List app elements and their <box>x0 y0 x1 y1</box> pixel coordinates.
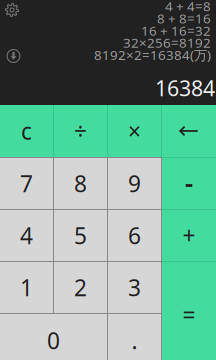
staticText: = <box>182 299 195 329</box>
staticText: ÷ <box>74 116 87 146</box>
button[interactable]: Settings <box>0 0 27 24</box>
staticText: 1 <box>20 272 33 302</box>
staticText: 8 <box>74 168 87 198</box>
staticText: 5 <box>74 220 87 250</box>
button[interactable]: × <box>108 105 161 157</box>
button[interactable]: 0 <box>0 314 107 360</box>
button[interactable]: 4 <box>0 210 53 261</box>
staticText: × <box>128 116 141 146</box>
staticText: 7 <box>20 168 33 198</box>
button[interactable]: 2 <box>54 262 107 313</box>
staticText: 2 <box>74 272 87 302</box>
button[interactable]: Minus <box>162 158 216 209</box>
button[interactable]: Backspace <box>162 105 216 157</box>
button[interactable]: 3 <box>108 262 161 313</box>
button[interactable]: + <box>162 210 216 261</box>
button[interactable]: 8 <box>54 158 107 209</box>
button[interactable]: . <box>108 314 161 360</box>
staticText: 32×256=8192 <box>123 34 211 51</box>
button[interactable]: c <box>0 105 53 157</box>
staticText: 16 + 16=32 <box>141 22 211 39</box>
staticText: 8 + 8=16 <box>157 9 211 27</box>
button[interactable]: History <box>0 43 28 69</box>
staticText: 4 <box>20 220 33 250</box>
button[interactable]: ÷ <box>54 105 107 157</box>
staticText: 8192×2=16384(万) <box>94 46 211 64</box>
button[interactable]: = <box>162 262 216 360</box>
button[interactable]: 7 <box>0 158 53 209</box>
staticText: 16384 <box>155 74 215 102</box>
staticText: 0 <box>47 325 60 355</box>
staticText: . <box>131 325 137 355</box>
button[interactable]: 5 <box>54 210 107 261</box>
staticText: 3 <box>128 272 141 302</box>
staticText: 6 <box>128 220 141 250</box>
staticText: 9 <box>128 168 141 198</box>
button[interactable]: 1 <box>0 262 53 313</box>
button[interactable]: 6 <box>108 210 161 261</box>
staticText: c <box>21 116 32 146</box>
staticText: 4 + 4=8 <box>165 0 211 15</box>
staticText: + <box>182 220 195 250</box>
button[interactable]: 9 <box>108 158 161 209</box>
